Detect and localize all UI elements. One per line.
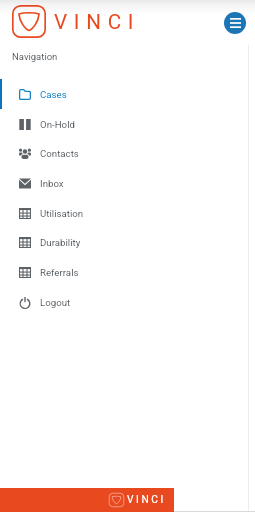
button[interactable]: Logout [0, 287, 255, 317]
button[interactable]: VINCI [0, 0, 255, 45]
button[interactable]: On-Hold [0, 109, 255, 139]
button[interactable]: Durability [0, 227, 255, 257]
staticText: Contacts [40, 148, 79, 159]
button[interactable]: Referrals [0, 257, 255, 287]
staticText: Durability [40, 237, 81, 248]
staticText: Referrals [40, 267, 79, 278]
button[interactable]: Cases [0, 79, 255, 109]
staticText: VINCI [54, 10, 141, 34]
button[interactable]: VINCI [0, 488, 174, 512]
staticText: Cases [40, 89, 67, 100]
staticText: VINCI [127, 494, 166, 506]
button[interactable]: Utilisation [0, 198, 255, 228]
button[interactable]: Inbox [0, 168, 255, 198]
button[interactable]: Contacts [0, 138, 255, 168]
staticText: Utilisation [40, 208, 84, 219]
staticText: Navigation [12, 51, 58, 62]
staticText: Inbox [40, 178, 64, 189]
staticText: Logout [40, 297, 71, 308]
staticText: On-Hold [40, 119, 75, 130]
button[interactable]: Open menu [224, 12, 246, 34]
